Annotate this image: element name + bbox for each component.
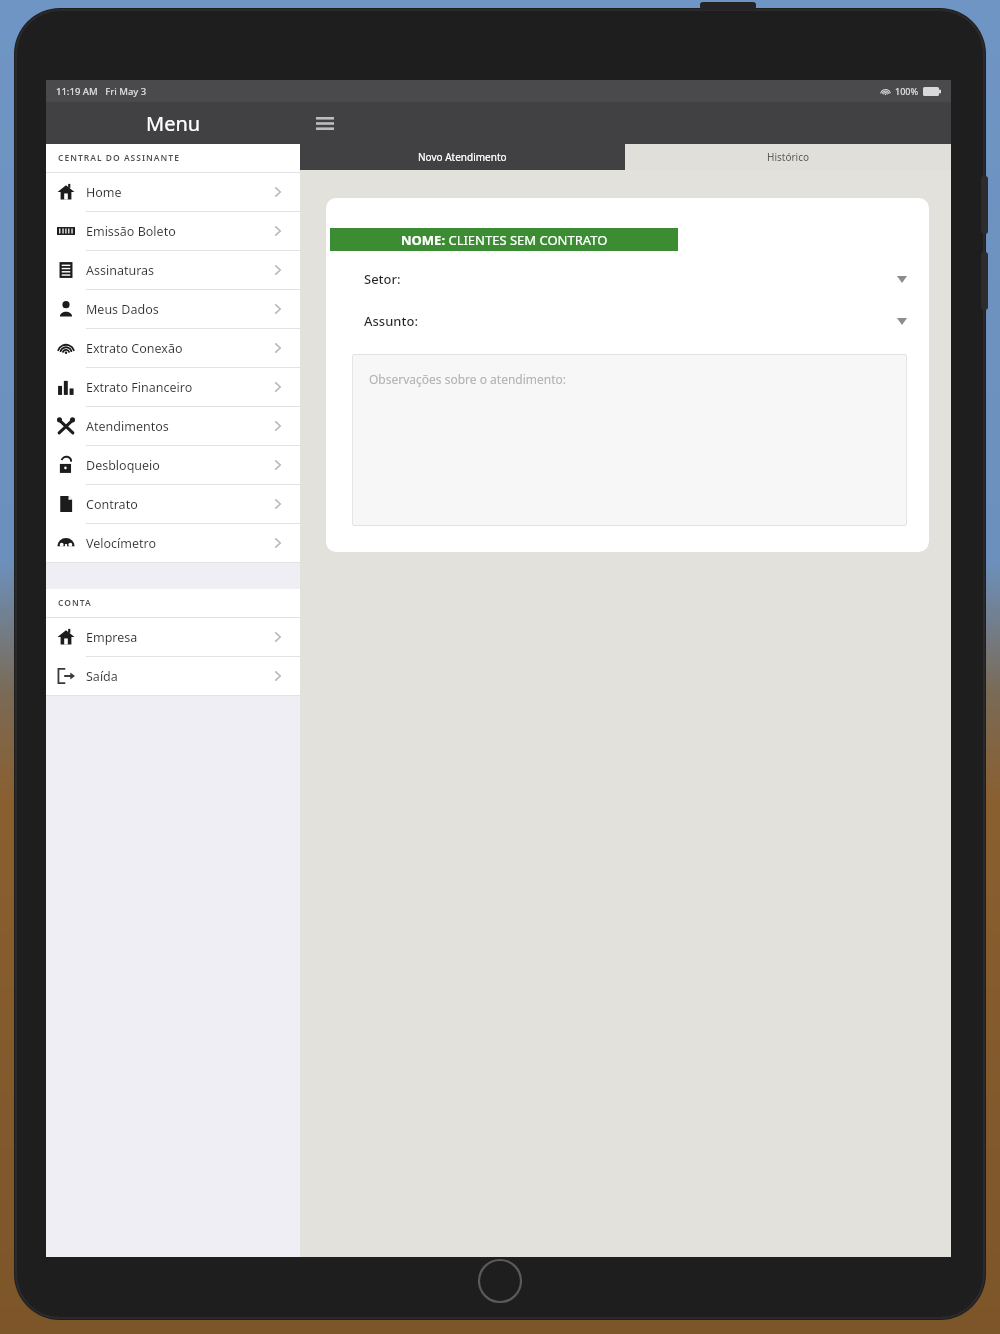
staticText: CONTA	[58, 597, 92, 609]
button[interactable]: Assinaturas	[46, 251, 300, 290]
button[interactable]: Assunto:	[364, 310, 907, 332]
staticText: Setor:	[364, 270, 401, 288]
button[interactable]: Menu	[312, 110, 338, 136]
button[interactable]: Saída	[46, 657, 300, 696]
staticText: Home	[86, 184, 270, 201]
staticText: Velocímetro	[86, 535, 270, 552]
staticText: Meus Dados	[86, 301, 270, 318]
staticText: Novo Atendimento	[418, 150, 507, 164]
button[interactable]: Emissão Boleto	[46, 212, 300, 251]
button[interactable]: Novo Atendimento	[300, 144, 625, 170]
staticText: Desbloqueio	[86, 457, 270, 474]
staticText: Assinaturas	[86, 262, 270, 279]
staticText: Emissão Boleto	[86, 223, 270, 240]
staticText: Atendimentos	[86, 418, 270, 435]
staticText: Extrato Conexão	[86, 340, 270, 357]
button[interactable]: Velocímetro	[46, 524, 300, 563]
staticText: Extrato Financeiro	[86, 379, 270, 396]
button[interactable]: Setor:	[364, 268, 907, 290]
staticText: Assunto:	[364, 312, 418, 330]
button[interactable]: Home	[46, 173, 300, 212]
staticText: 11:19 AM Fri May 3	[56, 85, 147, 98]
button[interactable]: Atendimentos	[46, 407, 300, 446]
button[interactable]: Observações sobre o atendimento:	[352, 354, 907, 526]
staticText: Histórico	[767, 150, 809, 164]
staticText: Empresa	[86, 629, 270, 646]
button[interactable]: Contrato	[46, 485, 300, 524]
staticText: CENTRAL DO ASSINANTE	[58, 152, 180, 164]
button[interactable]: Empresa	[46, 618, 300, 657]
staticText: Contrato	[86, 496, 270, 513]
button[interactable]: Histórico	[625, 144, 951, 170]
staticText: 100%	[895, 85, 919, 97]
staticText: NOME: CLIENTES SEM CONTRATO	[401, 231, 608, 249]
button[interactable]: Extrato Financeiro	[46, 368, 300, 407]
button[interactable]: Desbloqueio	[46, 446, 300, 485]
staticText: Observações sobre o atendimento:	[369, 371, 567, 387]
staticText: Menu	[146, 110, 201, 137]
staticText: Saída	[86, 668, 270, 685]
button[interactable]: Home	[477, 1258, 523, 1304]
button[interactable]: Meus Dados	[46, 290, 300, 329]
button[interactable]: Extrato Conexão	[46, 329, 300, 368]
